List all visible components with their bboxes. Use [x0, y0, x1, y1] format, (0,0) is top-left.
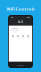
staticText: WiFi	[17, 21, 23, 24]
button[interactable]: Shortcut	[10, 34, 15, 39]
staticText: WiFi Controls	[6, 6, 34, 12]
button[interactable]: Shortcut	[15, 34, 20, 39]
button[interactable]: Shortcut	[26, 34, 31, 39]
button[interactable]: Shortcut	[20, 34, 26, 39]
